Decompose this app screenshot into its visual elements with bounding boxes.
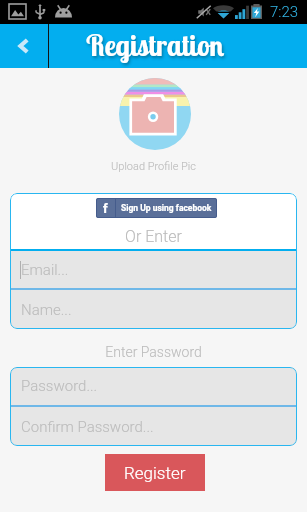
staticText: Or Enter	[10, 227, 297, 246]
staticText: Sign Up using facebook	[121, 203, 212, 213]
button[interactable]: Confirm Password...	[10, 407, 297, 446]
staticText: Upload Profile Pic	[0, 160, 307, 173]
button[interactable]: Back	[0, 24, 48, 68]
button[interactable]: Name...	[10, 290, 297, 329]
staticText: Email...	[21, 261, 69, 279]
button[interactable]: Upload profile picture	[119, 78, 191, 150]
staticText: Password...	[21, 377, 98, 395]
button[interactable]: Password...	[10, 367, 297, 405]
staticText: Enter Password	[0, 344, 307, 360]
staticText: 7:23	[270, 3, 299, 21]
staticText: f	[103, 201, 108, 216]
staticText: Register	[124, 463, 186, 483]
button[interactable]: Email...	[10, 251, 297, 288]
staticText: Name...	[21, 301, 72, 319]
button[interactable]: f	[96, 198, 217, 218]
staticText: Confirm Password...	[21, 418, 154, 436]
staticText: Registration	[86, 27, 225, 63]
button[interactable]: Register	[105, 454, 205, 491]
